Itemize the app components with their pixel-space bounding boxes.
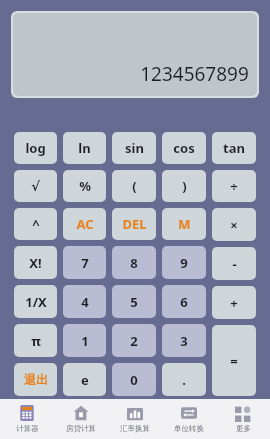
button[interactable]: AC bbox=[63, 208, 106, 240]
staticText: 3 bbox=[180, 332, 188, 350]
button[interactable]: π bbox=[14, 324, 57, 357]
staticText: = bbox=[230, 352, 238, 370]
staticText: tan bbox=[223, 139, 245, 157]
button[interactable]: 3 bbox=[162, 324, 206, 357]
staticText: . bbox=[182, 371, 186, 389]
button[interactable]: - bbox=[212, 247, 256, 280]
button[interactable]: + bbox=[212, 286, 256, 319]
button[interactable]: ) bbox=[162, 170, 206, 202]
staticText: π bbox=[31, 332, 41, 350]
button[interactable]: % bbox=[63, 170, 106, 202]
staticText: 4 bbox=[81, 293, 89, 311]
button[interactable]: 房贷计算 bbox=[54, 399, 108, 439]
staticText: 2 bbox=[130, 332, 138, 350]
button[interactable]: 退出 bbox=[14, 363, 57, 396]
staticText: √ bbox=[31, 179, 40, 194]
button[interactable]: ln bbox=[63, 132, 106, 164]
staticText: 0 bbox=[130, 371, 138, 389]
button[interactable]: 计算器 bbox=[0, 399, 54, 439]
button[interactable]: 更多 bbox=[216, 399, 270, 439]
button[interactable]: √ bbox=[14, 170, 57, 202]
staticText: AC bbox=[76, 215, 94, 233]
button[interactable]: 汇率换算 bbox=[108, 399, 162, 439]
staticText: 1 bbox=[81, 332, 89, 350]
button[interactable]: cos bbox=[162, 132, 206, 164]
staticText: e bbox=[81, 371, 89, 389]
button[interactable]: 7 bbox=[63, 246, 106, 279]
button[interactable]: 9 bbox=[162, 246, 206, 279]
button[interactable]: . bbox=[162, 363, 206, 396]
button[interactable]: = bbox=[212, 325, 256, 396]
staticText: 汇率换算 bbox=[120, 424, 150, 433]
staticText: 房贷计算 bbox=[66, 424, 96, 433]
button[interactable]: X! bbox=[14, 246, 57, 279]
button[interactable]: 4 bbox=[63, 285, 106, 318]
staticText: sin bbox=[125, 139, 144, 157]
button[interactable]: 单位转换 bbox=[162, 399, 216, 439]
button[interactable]: 2 bbox=[112, 324, 156, 357]
staticText: × bbox=[230, 216, 238, 234]
button[interactable]: 1 bbox=[63, 324, 106, 357]
staticText: 单位转换 bbox=[174, 424, 204, 433]
button[interactable]: ( bbox=[112, 170, 156, 202]
button[interactable]: 8 bbox=[112, 246, 156, 279]
button[interactable]: log bbox=[14, 132, 57, 164]
staticText: 1/X bbox=[25, 293, 47, 311]
button[interactable]: sin bbox=[112, 132, 156, 164]
staticText: ( bbox=[132, 177, 137, 195]
staticText: 计算器 bbox=[16, 424, 39, 433]
staticText: ÷ bbox=[230, 177, 238, 195]
staticText: DEL bbox=[122, 215, 147, 233]
staticText: log bbox=[25, 139, 46, 157]
button[interactable]: DEL bbox=[112, 208, 156, 240]
staticText: 9 bbox=[180, 254, 188, 272]
staticText: - bbox=[232, 255, 237, 273]
staticText: ln bbox=[78, 139, 91, 157]
button[interactable]: ÷ bbox=[212, 170, 256, 202]
button[interactable]: ^ bbox=[14, 208, 57, 240]
button[interactable]: × bbox=[212, 208, 256, 241]
staticText: 8 bbox=[130, 254, 138, 272]
button[interactable]: 6 bbox=[162, 285, 206, 318]
staticText: 1234567899 bbox=[140, 61, 249, 87]
staticText: X! bbox=[29, 254, 42, 272]
staticText: + bbox=[230, 294, 238, 312]
staticText: 更多 bbox=[236, 424, 251, 433]
staticText: ^ bbox=[32, 215, 40, 233]
button[interactable]: 5 bbox=[112, 285, 156, 318]
staticText: 退出 bbox=[24, 372, 48, 387]
staticText: % bbox=[79, 177, 91, 195]
button[interactable]: e bbox=[63, 363, 106, 396]
staticText: 7 bbox=[81, 254, 89, 272]
staticText: 5 bbox=[130, 293, 138, 311]
staticText: 6 bbox=[180, 293, 188, 311]
button[interactable]: 1/X bbox=[14, 285, 57, 318]
button[interactable]: tan bbox=[212, 132, 256, 164]
staticText: M bbox=[178, 215, 191, 233]
button[interactable]: M bbox=[162, 208, 206, 240]
staticText: cos bbox=[173, 139, 195, 157]
staticText: ) bbox=[182, 177, 187, 195]
button[interactable]: 0 bbox=[112, 363, 156, 396]
